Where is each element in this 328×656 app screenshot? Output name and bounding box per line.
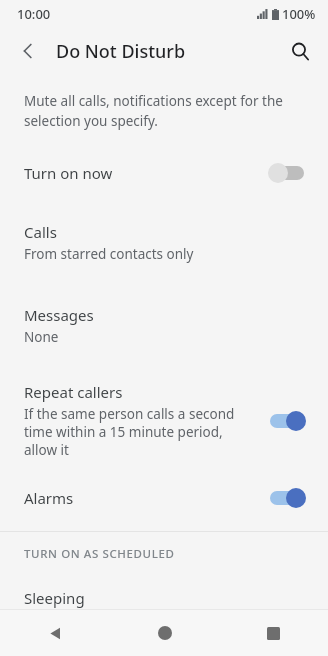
button[interactable]: Home <box>110 610 219 656</box>
staticText: Sleeping <box>24 588 85 608</box>
button[interactable]: Off <box>266 160 308 186</box>
button[interactable]: On <box>266 485 308 511</box>
staticText: If the same person calls a second time w… <box>24 405 250 459</box>
button[interactable]: Search <box>280 31 320 71</box>
button[interactable]: Recents <box>219 610 328 656</box>
staticText: Messages <box>24 305 94 325</box>
staticText: Mute all calls, notifications except for… <box>24 92 288 130</box>
button[interactable]: Messages <box>0 303 328 348</box>
staticText: None <box>24 328 59 346</box>
staticText: 100% <box>282 5 316 23</box>
staticText: Alarms <box>24 488 266 508</box>
staticText: Turn on now <box>24 163 266 183</box>
staticText: Repeat callers <box>24 382 123 402</box>
button[interactable]: Alarms <box>0 481 328 515</box>
staticText: Do Not Disturb <box>56 39 186 64</box>
button[interactable]: Back <box>0 610 110 656</box>
staticText: Calls <box>24 222 57 242</box>
staticText: From starred contacts only <box>24 245 194 263</box>
button[interactable]: On <box>266 408 308 434</box>
button[interactable]: Calls <box>0 220 328 265</box>
button[interactable]: Back <box>8 31 48 71</box>
button[interactable]: Turn on now <box>0 156 328 190</box>
staticText: TURN ON AS SCHEDULED <box>24 546 175 562</box>
button[interactable]: Repeat callers <box>0 382 328 459</box>
staticText: 10:00 <box>17 5 51 23</box>
